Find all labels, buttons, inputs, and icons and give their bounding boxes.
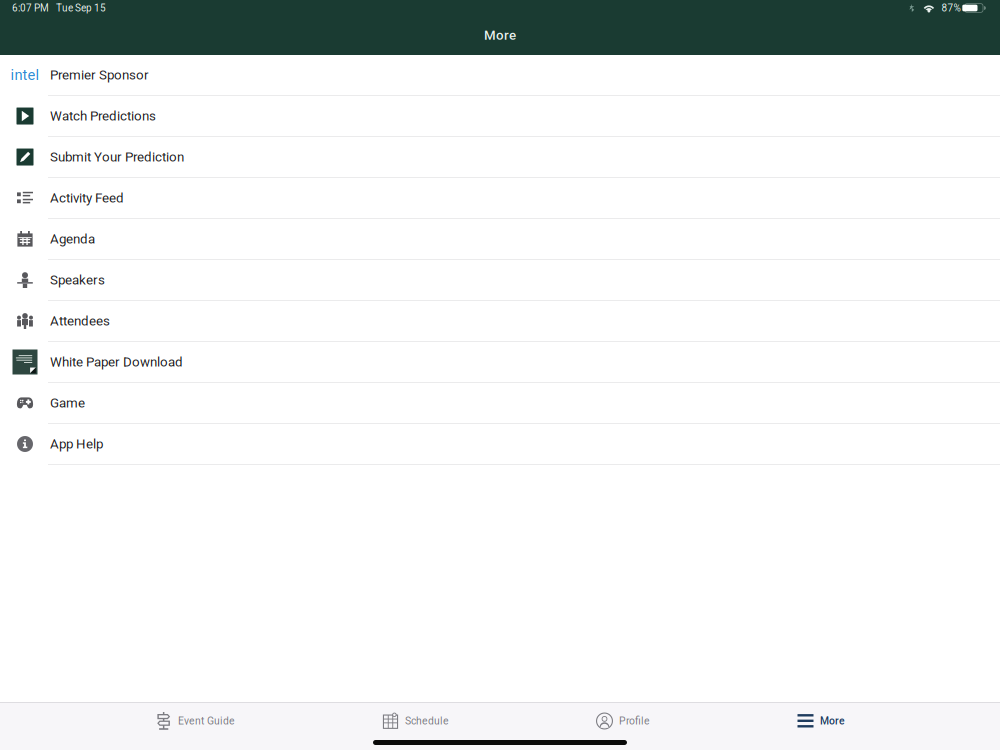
button[interactable]: Activity Feed: [0, 178, 1000, 219]
button[interactable]: More: [788, 701, 854, 741]
staticText: Profile: [619, 715, 650, 727]
button[interactable]: Game: [0, 383, 1000, 424]
staticText: Agenda: [50, 231, 95, 247]
staticText: Game: [50, 395, 85, 411]
button[interactable]: Attendees: [0, 301, 1000, 342]
staticText: Submit Your Prediction: [50, 149, 184, 165]
button[interactable]: Schedule: [373, 701, 458, 741]
button[interactable]: Speakers: [0, 260, 1000, 301]
staticText: Activity Feed: [50, 190, 124, 206]
staticText: Watch Predictions: [50, 108, 156, 124]
button[interactable]: App Help: [0, 424, 1000, 465]
staticText: App Help: [50, 436, 103, 452]
button[interactable]: Submit Your Prediction: [0, 137, 1000, 178]
staticText: Schedule: [405, 715, 449, 727]
staticText: Event Guide: [178, 715, 235, 727]
button[interactable]: intel: [0, 55, 1000, 96]
staticText: Tue Sep 15: [56, 2, 106, 14]
button[interactable]: Event Guide: [146, 701, 244, 741]
button[interactable]: Agenda: [0, 219, 1000, 260]
staticText: intel: [10, 66, 39, 84]
staticText: 87%: [941, 2, 960, 14]
staticText: More: [820, 715, 845, 727]
staticText: More: [484, 27, 516, 43]
staticText: 6:07 PM: [12, 2, 49, 14]
staticText: Speakers: [50, 272, 105, 288]
button[interactable]: White Paper Download: [0, 342, 1000, 383]
button[interactable]: Watch Predictions: [0, 96, 1000, 137]
staticText: Premier Sponsor: [50, 67, 149, 83]
staticText: Attendees: [50, 313, 110, 329]
staticText: White Paper Download: [50, 354, 183, 370]
button[interactable]: Profile: [587, 701, 659, 741]
